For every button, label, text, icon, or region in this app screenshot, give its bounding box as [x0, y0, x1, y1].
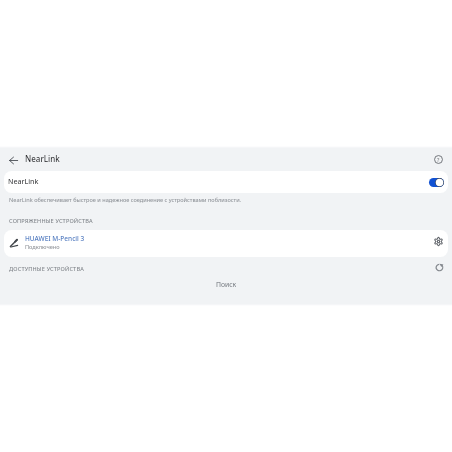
staticText: Подключено [25, 243, 60, 251]
staticText: Поиск [0, 280, 452, 289]
button[interactable]: Refresh device list [431, 259, 447, 275]
staticText: NearLink [8, 177, 39, 187]
staticText: ? [437, 156, 440, 163]
button[interactable]: Help [429, 150, 447, 168]
staticText: NearLink обеспечивает быстрое и надежное… [9, 196, 242, 204]
button[interactable]: HUAWEI M-Pencil 3 [4, 230, 448, 257]
staticText: HUAWEI M-Pencil 3 [25, 234, 85, 243]
button[interactable]: NearLink [4, 171, 448, 193]
button[interactable]: Device settings [429, 232, 447, 250]
button[interactable]: Back [3, 152, 24, 168]
staticText: СОПРЯЖЕННЫЕ УСТРОЙСТВА [9, 217, 93, 225]
staticText: NearLink [25, 153, 60, 164]
button[interactable]: Toggle NearLink, on [429, 178, 444, 187]
staticText: ДОСТУПНЫЕ УСТРОЙСТВА [9, 265, 84, 273]
